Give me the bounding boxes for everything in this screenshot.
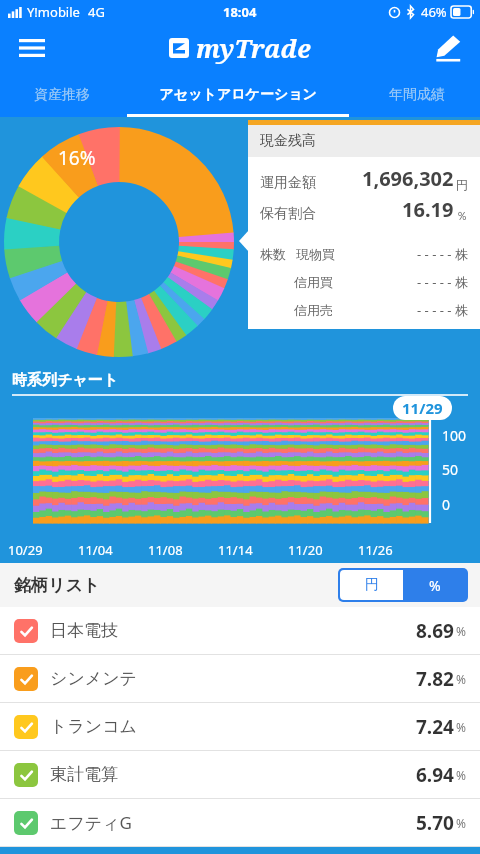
staticText: 銘柄リスト	[14, 575, 101, 596]
staticText: 11/14	[218, 541, 253, 559]
staticText: 現金残高	[260, 132, 316, 150]
staticText: エフティG	[50, 811, 132, 834]
staticText: 株数	[260, 246, 286, 262]
staticText: 株	[455, 246, 468, 262]
staticText: 11/08	[148, 541, 183, 559]
staticText: 信用買	[294, 274, 333, 290]
button[interactable]: 東計電算	[0, 751, 480, 798]
staticText: 円	[365, 576, 379, 594]
button[interactable]: %	[403, 570, 466, 600]
staticText: 7.24	[416, 714, 454, 740]
staticText: 日本電技	[50, 620, 118, 641]
staticText: %	[456, 815, 466, 831]
staticText: %	[456, 767, 466, 783]
staticText: 16%	[58, 145, 96, 171]
button[interactable]: 日本電技	[0, 607, 480, 654]
staticText: 8.69	[416, 618, 454, 644]
button[interactable]: 資産推移	[0, 72, 123, 117]
staticText: %	[429, 576, 441, 595]
staticText: 信用売	[294, 302, 333, 318]
staticText: 現物買	[296, 246, 335, 262]
button[interactable]: トランコム	[0, 703, 480, 750]
staticText: 50	[442, 460, 459, 479]
button[interactable]: シンメンテ	[0, 655, 480, 702]
staticText: 4G	[88, 3, 105, 21]
staticText: 資産推移	[34, 86, 90, 104]
staticText: Y!mobile	[27, 3, 80, 21]
staticText: 保有割合	[260, 205, 316, 223]
staticText: 100	[442, 426, 467, 445]
staticText: - - - - -	[417, 245, 452, 263]
staticText: 株	[455, 274, 468, 290]
staticText: 株	[455, 302, 468, 318]
staticText: %	[456, 623, 466, 639]
staticText: 5.70	[416, 810, 454, 836]
staticText: - - - - -	[417, 273, 452, 291]
button[interactable]: Edit	[426, 26, 470, 70]
button[interactable]: Menu	[10, 26, 54, 70]
staticText: 18:04	[223, 3, 257, 21]
staticText: %	[456, 719, 466, 735]
button[interactable]: 年間成績	[353, 72, 480, 117]
staticText: 円	[456, 177, 468, 192]
staticText: 7.82	[416, 666, 454, 692]
staticText: myTrade	[196, 31, 311, 65]
staticText: シンメンテ	[50, 668, 137, 689]
staticText: 6.94	[416, 762, 454, 788]
staticText: アセットアロケーション	[159, 86, 317, 104]
staticText: 11/04	[78, 541, 113, 559]
staticText: 46%	[421, 3, 447, 21]
button[interactable]: アセットアロケーション	[123, 72, 353, 117]
staticText: 時系列チャート	[12, 371, 119, 390]
staticText: トランコム	[50, 716, 137, 737]
staticText: 10/29	[8, 541, 43, 559]
staticText: 11/20	[288, 541, 323, 559]
staticText: ％	[456, 208, 468, 223]
staticText: 16.19	[402, 196, 454, 223]
staticText: - - - - -	[417, 301, 452, 319]
staticText: 1,696,302	[362, 165, 454, 192]
staticText: 年間成績	[389, 86, 445, 104]
staticText: %	[456, 671, 466, 687]
staticText: 運用金額	[260, 174, 316, 192]
button[interactable]: エフティG	[0, 799, 480, 846]
staticText: 0	[442, 495, 451, 514]
staticText: 11/29	[402, 398, 443, 418]
staticText: 東計電算	[50, 764, 118, 785]
button[interactable]: 円	[340, 570, 403, 600]
staticText: 11/26	[358, 541, 393, 559]
